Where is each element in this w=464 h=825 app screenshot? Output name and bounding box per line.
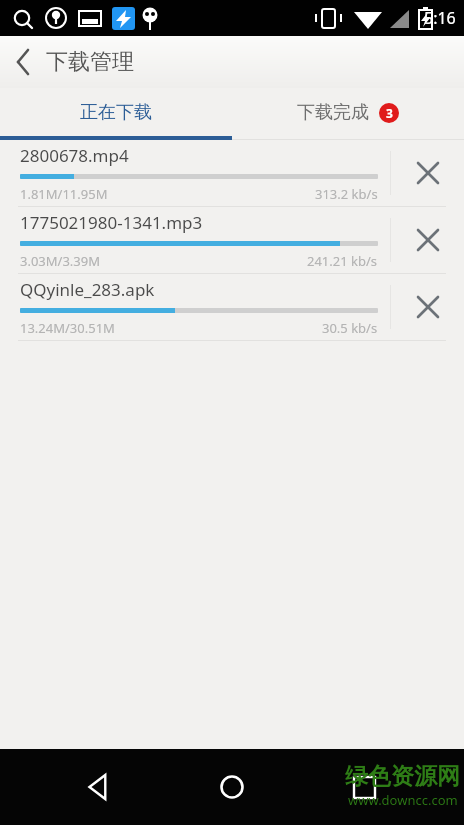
button[interactable]: Back bbox=[68, 755, 132, 819]
button[interactable]: Cancel download bbox=[391, 274, 464, 340]
button[interactable]: Recents bbox=[332, 755, 396, 819]
button[interactable]: 正在下载 bbox=[0, 88, 232, 136]
button[interactable]: QQyinle_283.apk bbox=[0, 274, 464, 340]
staticText: 正在下载 bbox=[80, 101, 152, 124]
staticText: 313.2 kb/s bbox=[315, 185, 378, 203]
button[interactable]: 下载完成 bbox=[232, 88, 464, 136]
staticText: www.downcc.com bbox=[348, 791, 458, 809]
staticText: 3 bbox=[386, 105, 393, 121]
button[interactable]: Home bbox=[200, 755, 264, 819]
button[interactable]: Back bbox=[0, 39, 46, 85]
button[interactable]: Cancel download bbox=[391, 207, 464, 273]
button[interactable]: 1775021980-1341.mp3 bbox=[0, 207, 464, 273]
staticText: 下载管理 bbox=[46, 48, 134, 76]
staticText: 1775021980-1341.mp3 bbox=[20, 211, 203, 234]
staticText: 13.24M/30.51M bbox=[20, 319, 115, 337]
staticText: 5:16 bbox=[424, 7, 456, 29]
staticText: 241.21 kb/s bbox=[307, 252, 378, 270]
staticText: 下载完成 bbox=[297, 101, 369, 124]
button[interactable]: Cancel download bbox=[391, 140, 464, 206]
staticText: 30.5 kb/s bbox=[322, 319, 378, 337]
button[interactable]: 2800678.mp4 bbox=[0, 140, 464, 206]
staticText: 1.81M/11.95M bbox=[20, 185, 108, 203]
staticText: 3.03M/3.39M bbox=[20, 252, 101, 270]
staticText: 2800678.mp4 bbox=[20, 144, 129, 167]
staticText: 绿色资源网 bbox=[345, 762, 460, 791]
staticText: QQyinle_283.apk bbox=[20, 278, 155, 301]
